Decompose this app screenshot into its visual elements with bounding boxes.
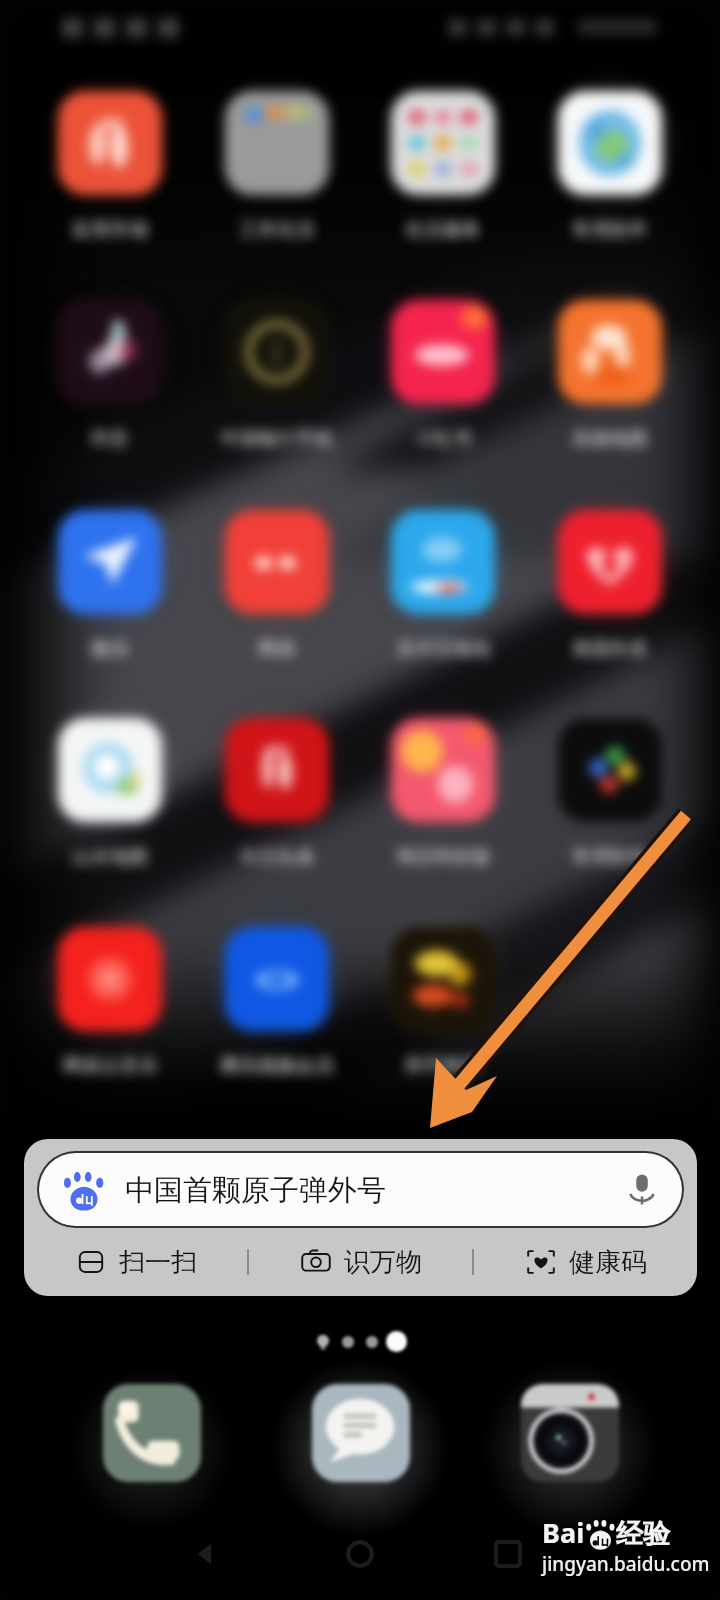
staticText: 常用软件 <box>572 845 648 869</box>
staticText: 支付宝钱包 <box>396 637 491 661</box>
staticText: 生活服务 <box>405 218 481 242</box>
staticText: 微信 <box>91 637 129 661</box>
staticText: Bai <box>542 1514 585 1551</box>
staticText: 抖音 <box>91 427 129 451</box>
staticText: 今日头条 <box>239 845 315 869</box>
button[interactable]: 和平精英 <box>358 1053 528 1079</box>
button[interactable]: Page 2 <box>366 1336 378 1348</box>
staticText: 应用市场 <box>72 218 148 242</box>
button[interactable]: Phone <box>103 1384 201 1482</box>
button[interactable]: 扫一扫 <box>24 1230 247 1294</box>
button[interactable]: 今日头条 <box>192 844 362 870</box>
button[interactable]: 生活服务 <box>358 217 528 243</box>
staticText: 和平精英 <box>405 1054 481 1078</box>
button[interactable]: 美团外卖 <box>525 636 695 662</box>
button[interactable]: 中国首颗原子弹外号 <box>39 1153 682 1226</box>
button[interactable]: 山水地图 <box>25 844 195 870</box>
staticText: 中国首颗原子弹外号 <box>125 1172 386 1209</box>
staticText: 腾讯视频会员 <box>220 1054 334 1078</box>
button[interactable]: 常用软件 <box>525 844 695 870</box>
button[interactable]: 工作生活 <box>192 217 362 243</box>
button[interactable]: 中国首颗原子弹外号 <box>24 1139 697 1296</box>
staticText: 高德地图 <box>572 427 648 451</box>
staticText: 工作生活 <box>239 218 315 242</box>
button[interactable]: Voice search <box>624 1172 660 1208</box>
button[interactable]: 中国银行手机 <box>192 426 362 452</box>
button[interactable]: 高德地图 <box>525 426 695 452</box>
staticText: 网易云音乐 <box>63 1054 158 1078</box>
button[interactable]: Baidu Jingyan watermark <box>542 1514 710 1577</box>
button[interactable]: Recents <box>482 1528 534 1580</box>
button[interactable]: Messages <box>312 1384 410 1482</box>
button[interactable]: 识万物 <box>249 1230 472 1294</box>
button[interactable]: 健康码 <box>474 1230 697 1294</box>
staticText: 常用软件 <box>572 218 648 242</box>
staticText: 山水地图 <box>72 845 148 869</box>
staticText: 经验 <box>616 1517 670 1551</box>
button[interactable]: Page 3, current <box>386 1331 407 1352</box>
staticText: 小红书 <box>415 427 472 451</box>
staticText: 淘宝特价版 <box>396 845 491 869</box>
button[interactable]: 支付宝钱包 <box>358 636 528 662</box>
button[interactable]: 常用软件 <box>525 217 695 243</box>
button[interactable]: 应用市场 <box>25 217 195 243</box>
button[interactable]: 网易云音乐 <box>25 1053 195 1079</box>
staticText: 识万物 <box>344 1246 422 1279</box>
button[interactable]: 抖音 <box>25 426 195 452</box>
staticText: 网易 <box>258 637 296 661</box>
staticText: 中国银行手机 <box>220 427 334 451</box>
button[interactable]: 腾讯视频会员 <box>192 1053 362 1079</box>
button[interactable]: Home <box>334 1528 386 1580</box>
button[interactable]: Shortcuts page <box>313 1332 333 1352</box>
button[interactable]: 网易 <box>192 636 362 662</box>
button[interactable]: Camera <box>521 1384 619 1482</box>
button[interactable]: Back <box>180 1528 232 1580</box>
staticText: 扫一扫 <box>119 1246 197 1279</box>
button[interactable]: 淘宝特价版 <box>358 844 528 870</box>
staticText: 健康码 <box>569 1246 647 1279</box>
button[interactable]: 小红书 <box>358 426 528 452</box>
button[interactable]: Page 1 <box>342 1336 354 1348</box>
staticText: 美团外卖 <box>572 637 648 661</box>
button[interactable]: 微信 <box>25 636 195 662</box>
staticText: jingyan.baidu.com <box>542 1551 710 1577</box>
